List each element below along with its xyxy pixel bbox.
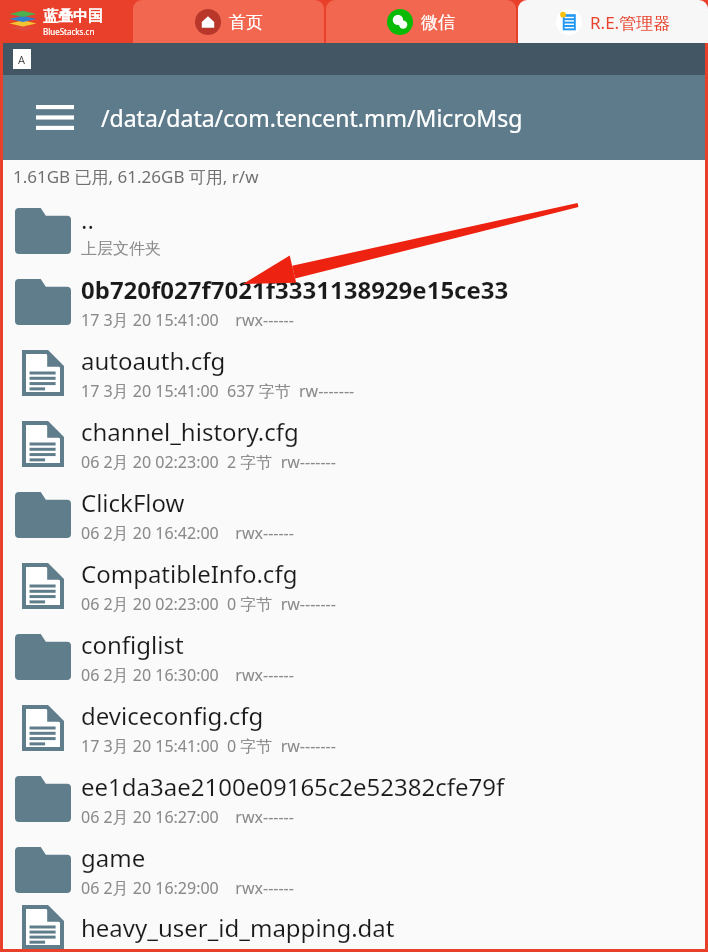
button[interactable]: heavy_user_id_mapping.dat bbox=[3, 905, 705, 949]
staticText: R.E.管理器 bbox=[590, 11, 671, 34]
button[interactable]: ee1da3ae2100e09165c2e52382cfe79f bbox=[3, 763, 705, 834]
staticText: heavy_user_id_mapping.dat bbox=[81, 911, 395, 944]
button[interactable]: deviceconfig.cfg bbox=[3, 692, 705, 763]
staticText: 微信 bbox=[421, 12, 455, 33]
staticText: .. bbox=[81, 203, 94, 236]
staticText: 0b720f027f7021f3331138929e15ce33 bbox=[81, 273, 509, 306]
staticText: 首页 bbox=[229, 12, 263, 33]
staticText: channel_history.cfg bbox=[81, 415, 299, 448]
button[interactable]: game bbox=[3, 834, 705, 905]
staticText: A bbox=[18, 52, 26, 67]
staticText: CompatibleInfo.cfg bbox=[81, 557, 298, 590]
button[interactable]: autoauth.cfg bbox=[3, 337, 705, 408]
button[interactable]: Menu bbox=[29, 92, 81, 144]
button[interactable]: R.E.管理器 bbox=[518, 0, 708, 43]
button[interactable]: 0b720f027f7021f3331138929e15ce33 bbox=[3, 266, 705, 337]
staticText: 06 2月 20 02:23:00 2 字节 rw------- bbox=[81, 451, 336, 473]
button[interactable]: 首页 bbox=[133, 0, 324, 43]
staticText: 17 3月 20 15:41:00 0 字节 rw------- bbox=[81, 735, 336, 757]
staticText: ClickFlow bbox=[81, 486, 185, 519]
staticText: 06 2月 20 02:23:00 0 字节 rw------- bbox=[81, 593, 336, 615]
staticText: 17 3月 20 15:41:00 637 字节 rw------- bbox=[81, 380, 355, 402]
staticText: 06 2月 20 16:30:00 rwx------ bbox=[81, 664, 294, 686]
staticText: autoauth.cfg bbox=[81, 344, 226, 377]
staticText: 蓝叠中国 bbox=[43, 7, 103, 26]
button[interactable]: 微信 bbox=[326, 0, 516, 43]
staticText: 17 3月 20 15:41:00 rwx------ bbox=[81, 309, 294, 331]
staticText: 1.61GB 已用, 61.26GB 可用, r/w bbox=[13, 165, 259, 188]
button[interactable]: 蓝叠中国 bbox=[0, 0, 131, 43]
staticText: 06 2月 20 16:27:00 rwx------ bbox=[81, 806, 294, 828]
button[interactable]: .. bbox=[3, 195, 705, 266]
button[interactable]: ClickFlow bbox=[3, 479, 705, 550]
button[interactable]: channel_history.cfg bbox=[3, 408, 705, 479]
button[interactable]: CompatibleInfo.cfg bbox=[3, 550, 705, 621]
staticText: 上层文件夹 bbox=[81, 239, 161, 259]
staticText: deviceconfig.cfg bbox=[81, 699, 264, 732]
staticText: BlueStacks.cn bbox=[43, 26, 95, 37]
staticText: ee1da3ae2100e09165c2e52382cfe79f bbox=[81, 770, 505, 803]
staticText: 06 2月 20 16:42:00 rwx------ bbox=[81, 522, 294, 544]
button[interactable]: configlist bbox=[3, 621, 705, 692]
staticText: 06 2月 20 16:29:00 rwx------ bbox=[81, 877, 294, 899]
staticText: configlist bbox=[81, 628, 184, 661]
staticText: game bbox=[81, 841, 146, 874]
staticText: /data/data/com.tencent.mm/MicroMsg bbox=[101, 102, 523, 133]
